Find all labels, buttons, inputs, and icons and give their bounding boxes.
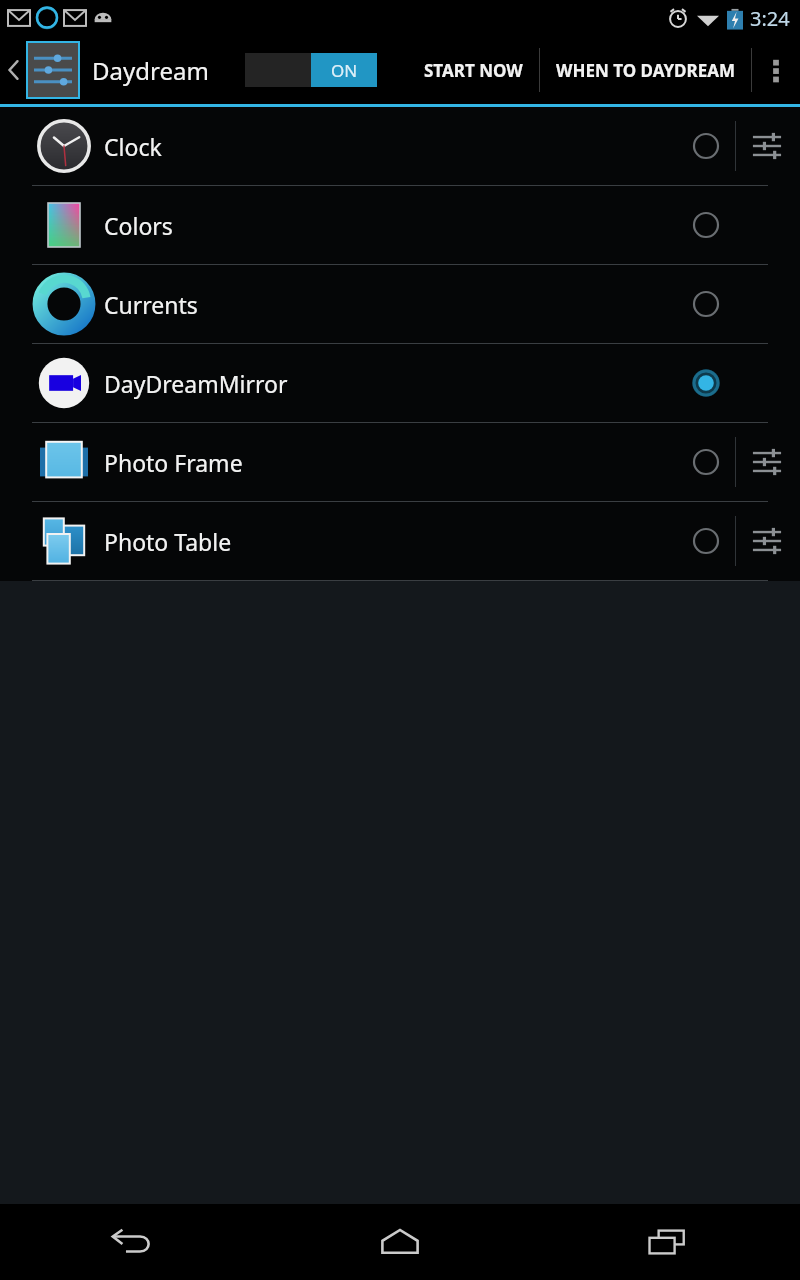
button[interactable]: Clock settings xyxy=(736,115,798,177)
button[interactable]: Daydream on/off xyxy=(245,53,377,87)
staticText: ON xyxy=(331,59,358,82)
button[interactable]: Clock xyxy=(0,107,800,185)
button[interactable]: Select DayDreamMirror xyxy=(677,354,735,412)
button[interactable]: Recent apps xyxy=(533,1204,800,1280)
button[interactable]: Home xyxy=(266,1204,533,1280)
staticText: WHEN TO DAYDREAM xyxy=(556,59,735,82)
button[interactable]: Photo Frame xyxy=(0,423,800,501)
button[interactable]: Back xyxy=(0,1204,266,1280)
button[interactable]: Colors xyxy=(0,186,800,264)
staticText: Photo Frame xyxy=(104,447,243,478)
staticText: DayDreamMirror xyxy=(104,368,288,399)
button[interactable]: Select Colors xyxy=(677,196,735,254)
button[interactable]: Currents xyxy=(0,265,800,343)
staticText: START NOW xyxy=(424,59,523,82)
button[interactable]: Photo Table settings xyxy=(736,510,798,572)
button[interactable]: Select Currents xyxy=(677,275,735,333)
staticText: Daydream xyxy=(92,54,209,87)
button[interactable]: Select Photo Table xyxy=(677,512,735,570)
button[interactable]: Photo Frame settings xyxy=(736,431,798,493)
button[interactable]: DayDreamMirror xyxy=(0,344,800,422)
staticText: Photo Table xyxy=(104,526,232,557)
button[interactable]: Navigate up xyxy=(0,36,213,104)
button[interactable]: Select Clock xyxy=(677,117,735,175)
button[interactable]: Photo Table xyxy=(0,502,800,580)
staticText: Clock xyxy=(104,131,162,162)
button[interactable]: WHEN TO DAYDREAM xyxy=(540,36,751,104)
button[interactable]: START NOW xyxy=(408,36,539,104)
staticText: Currents xyxy=(104,289,198,320)
button[interactable]: Select Photo Frame xyxy=(677,433,735,491)
staticText: 3:24 xyxy=(750,5,790,32)
button[interactable]: More options xyxy=(752,36,800,104)
staticText: Colors xyxy=(104,210,173,241)
